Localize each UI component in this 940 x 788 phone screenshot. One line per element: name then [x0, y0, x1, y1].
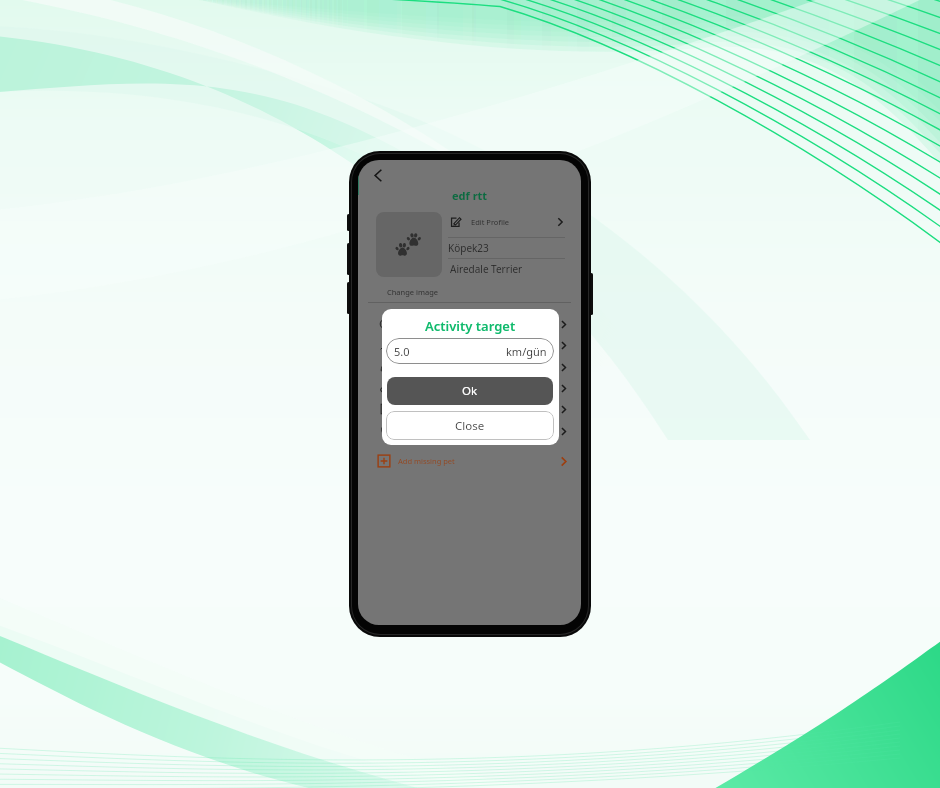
staticText: Change image	[387, 287, 439, 297]
staticText: km/gün	[506, 344, 547, 359]
staticText: Vaccinations	[398, 340, 442, 350]
button[interactable]: Back	[369, 166, 387, 184]
button[interactable]: Vaccinations	[368, 335, 571, 355]
staticText: 5.0	[394, 344, 410, 359]
button[interactable]: 5.0	[386, 338, 554, 364]
staticText: Activity target	[398, 319, 447, 329]
button[interactable]: Add missing pet	[368, 451, 571, 471]
staticText: Ok	[462, 383, 478, 399]
button[interactable]: Activity target	[368, 314, 571, 334]
staticText: Airedale Terrier	[450, 262, 523, 276]
button[interactable]: Airedale Terrier	[448, 258, 579, 279]
staticText: Add missing pet	[398, 456, 455, 466]
staticText: Close	[455, 418, 485, 434]
staticText: Notes	[398, 404, 419, 414]
button[interactable]: Close	[386, 411, 554, 440]
button[interactable]: Köpek23	[448, 237, 579, 258]
button[interactable]: Ok	[387, 377, 553, 405]
staticText: Activity target	[425, 317, 516, 335]
button[interactable]: Edit Profile	[448, 211, 579, 233]
button[interactable]: Allergies	[368, 357, 571, 377]
button[interactable]: Lost pet	[368, 421, 571, 441]
staticText: Köpek23	[448, 241, 489, 255]
button[interactable]: Pet photo	[376, 212, 442, 277]
staticText: Allergies	[398, 362, 429, 372]
staticText: edf rtt	[452, 188, 488, 203]
button[interactable]: Change image	[384, 284, 442, 299]
button[interactable]: Notes	[368, 399, 571, 419]
staticText: Edit Profile	[471, 217, 510, 227]
button[interactable]: Medications	[368, 378, 571, 398]
